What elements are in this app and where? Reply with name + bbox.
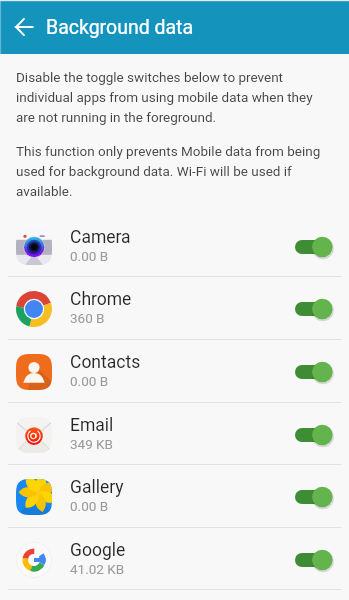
button[interactable]: Toggle background data	[295, 359, 334, 385]
button[interactable]: Contacts	[0, 340, 349, 403]
button[interactable]: Toggle background data	[295, 422, 334, 448]
staticText: 0.00 B	[70, 373, 109, 389]
button[interactable]: Toggle background data	[295, 296, 334, 322]
staticText: Gallery	[70, 477, 124, 498]
staticText: 349 KB	[70, 436, 113, 452]
button[interactable]: Toggle background data	[295, 547, 334, 573]
button[interactable]: Back	[7, 10, 41, 44]
button[interactable]: Chrome	[0, 277, 349, 340]
staticText: 41.02 KB	[70, 561, 125, 577]
button[interactable]: Gallery	[0, 465, 349, 528]
button[interactable]: Google	[0, 528, 349, 591]
button[interactable]: Toggle background data	[295, 234, 334, 260]
button[interactable]: Toggle background data	[295, 484, 334, 510]
button[interactable]: Email	[0, 403, 349, 466]
staticText: This function only prevents Mobile data …	[16, 143, 326, 199]
staticText: Google	[70, 540, 126, 561]
staticText: Camera	[70, 227, 131, 248]
staticText: Contacts	[70, 352, 141, 373]
staticText: Email	[70, 415, 114, 436]
staticText: Chrome	[70, 289, 132, 310]
staticText: 0.00 B	[70, 498, 109, 514]
staticText: 0.00 B	[70, 248, 109, 264]
staticText: Background data	[46, 16, 194, 39]
staticText: Disable the toggle switches below to pre…	[16, 69, 326, 125]
staticText: 360 B	[70, 310, 105, 326]
button[interactable]: Camera	[0, 215, 349, 278]
